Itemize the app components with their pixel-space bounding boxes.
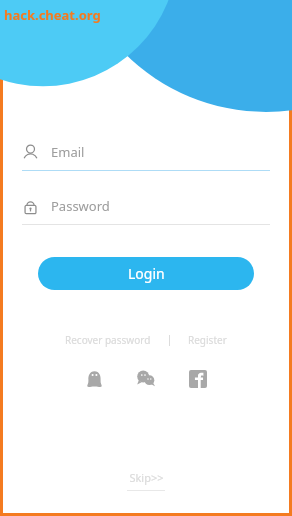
button[interactable]: Recover password [61, 330, 155, 350]
staticText: Recover password [65, 333, 151, 347]
button[interactable]: Password [22, 193, 270, 225]
button[interactable]: Email [22, 139, 270, 171]
staticText: Password [51, 197, 110, 215]
staticText: hack.cheat.org [4, 6, 101, 24]
staticText: Login [128, 264, 165, 283]
button[interactable]: Skip>> [127, 470, 165, 491]
staticText: Email [51, 143, 85, 161]
button[interactable]: Login [38, 257, 254, 290]
button[interactable]: Sign in with Facebook [183, 364, 213, 394]
staticText: Register [188, 333, 227, 347]
staticText: Skip>> [129, 470, 164, 485]
button[interactable]: Sign in with WeChat [131, 364, 161, 394]
button[interactable]: Register [184, 330, 231, 350]
button[interactable]: Sign in with QQ [79, 364, 109, 394]
